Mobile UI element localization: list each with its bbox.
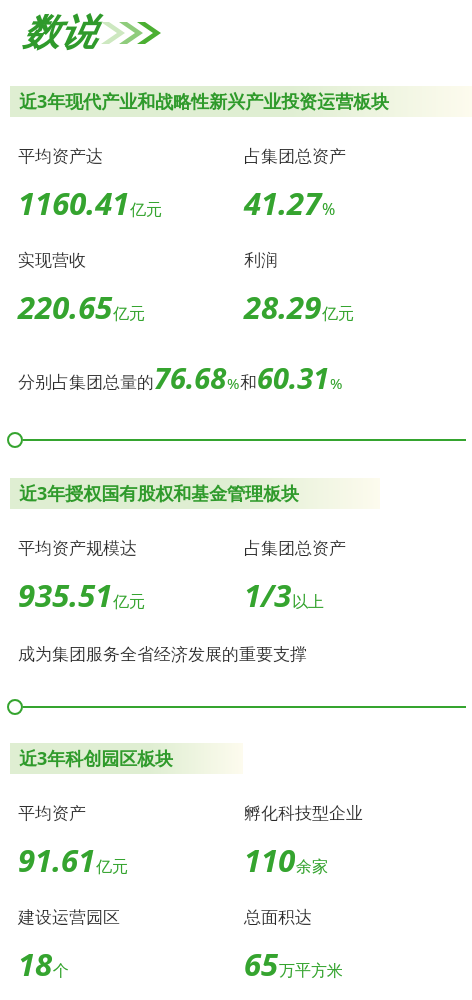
staticText: 220.65 (18, 286, 113, 328)
staticText: 占集团总资产 (244, 146, 346, 167)
staticText: 110 (244, 839, 296, 881)
staticText: % (330, 373, 343, 393)
button[interactable]: 近3年现代产业和战略性新兴产业投资运营板块 (10, 86, 472, 117)
staticText: 近3年授权国有股权和基金管理板块 (19, 481, 300, 506)
staticText: 935.51 (18, 574, 113, 616)
staticText: 建设运营园区 (18, 907, 120, 928)
staticText: 近3年现代产业和战略性新兴产业投资运营板块 (19, 89, 390, 114)
staticText: 近3年科创园区板块 (19, 746, 174, 771)
staticText: 余家 (296, 857, 328, 877)
staticText: 孵化科技型企业 (244, 803, 363, 824)
button[interactable]: 近3年授权国有股权和基金管理板块 (10, 478, 380, 509)
button[interactable]: 数说 (22, 9, 159, 56)
staticText: 亿元 (113, 304, 145, 324)
staticText: 实现营收 (18, 250, 86, 271)
staticText: % (227, 373, 240, 393)
staticText: 平均资产达 (18, 146, 103, 167)
staticText: 91.61 (18, 839, 96, 881)
staticText: 1160.41 (18, 182, 130, 224)
button[interactable]: 近3年科创园区板块 (10, 743, 243, 774)
staticText: % (322, 198, 336, 220)
staticText: 分别占集团总量的 (18, 372, 154, 393)
staticText: 总面积达 (244, 907, 312, 928)
staticText: 占集团总资产 (244, 538, 346, 559)
button[interactable] (0, 431, 472, 449)
staticText: 亿元 (96, 857, 128, 877)
staticText: 成为集团服务全省经济发展的重要支撑 (18, 644, 307, 665)
other: More (99, 17, 159, 49)
staticText: 个 (53, 961, 69, 981)
staticText: 亿元 (113, 592, 145, 612)
staticText: 以上 (292, 592, 324, 612)
staticText: 数说 (22, 9, 96, 56)
staticText: 18 (18, 943, 53, 985)
staticText: 41.27 (244, 182, 322, 224)
staticText: 76.68 (154, 358, 227, 397)
staticText: 利润 (244, 250, 278, 271)
staticText: 平均资产规模达 (18, 538, 137, 559)
staticText: 28.29 (244, 286, 322, 328)
staticText: 60.31 (257, 358, 330, 397)
staticText: 万平方米 (279, 961, 343, 981)
staticText: 1/3 (244, 574, 292, 616)
staticText: 和 (240, 372, 257, 393)
button[interactable] (0, 698, 472, 716)
staticText: 平均资产 (18, 803, 86, 824)
staticText: 65 (244, 943, 279, 985)
staticText: 亿元 (130, 200, 162, 220)
staticText: 亿元 (322, 304, 354, 324)
